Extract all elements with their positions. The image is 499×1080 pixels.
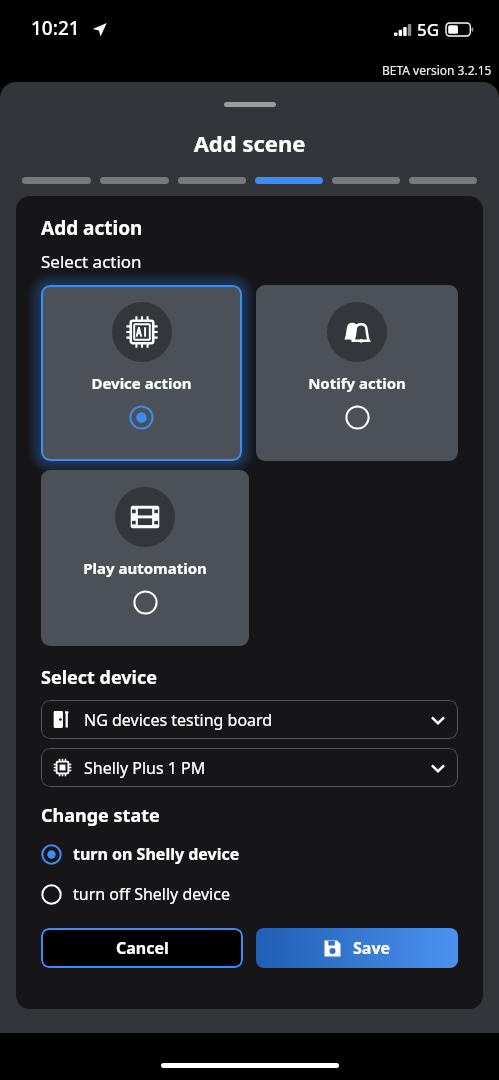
staticText: Add action bbox=[41, 215, 143, 241]
staticText: Device action bbox=[45, 373, 238, 393]
staticText: Select device bbox=[41, 665, 158, 690]
button[interactable] bbox=[100, 177, 169, 184]
staticText: Notify action bbox=[260, 373, 454, 393]
button[interactable]: Shelly Plus 1 PM bbox=[41, 748, 458, 787]
button[interactable]: Play automation bbox=[41, 470, 249, 646]
staticText: NG devices testing board bbox=[84, 709, 273, 731]
staticText: 5G bbox=[417, 18, 440, 41]
staticText: Change state bbox=[41, 803, 160, 828]
button[interactable]: Cancel bbox=[41, 928, 243, 968]
staticText: Cancel bbox=[116, 937, 169, 959]
staticText: turn off Shelly device bbox=[73, 883, 230, 905]
button[interactable]: Notify action bbox=[256, 285, 458, 461]
staticText: BETA version 3.2.15 bbox=[382, 62, 492, 78]
staticText: Play automation bbox=[45, 558, 245, 578]
button[interactable]: Device action bbox=[41, 285, 242, 461]
staticText: turn on Shelly device bbox=[73, 843, 240, 865]
button[interactable]: turn off Shelly device bbox=[41, 879, 458, 909]
staticText: 10:21 bbox=[31, 15, 80, 41]
button[interactable] bbox=[178, 177, 246, 184]
staticText: Select action bbox=[41, 250, 142, 273]
staticText: Save bbox=[353, 937, 391, 959]
button[interactable]: NG devices testing board bbox=[41, 700, 458, 739]
button[interactable] bbox=[255, 177, 323, 184]
button[interactable] bbox=[409, 177, 477, 184]
staticText: Shelly Plus 1 PM bbox=[84, 757, 206, 779]
button[interactable] bbox=[332, 177, 400, 184]
button[interactable]: turn on Shelly device bbox=[41, 839, 458, 869]
staticText: Add scene bbox=[0, 128, 499, 158]
button[interactable] bbox=[22, 177, 91, 184]
button[interactable]: Save bbox=[256, 928, 458, 968]
